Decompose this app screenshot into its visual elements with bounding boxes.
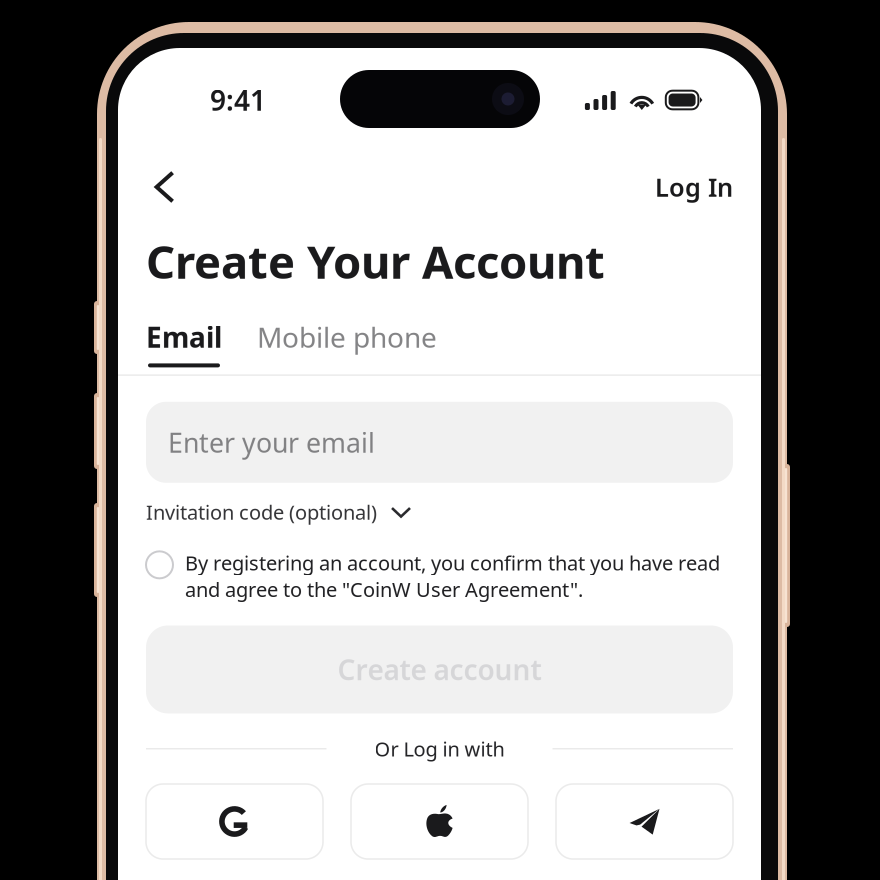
button[interactable]: Agree to the CoinW User Agreement — [146, 549, 173, 578]
button[interactable]: Log In — [655, 163, 733, 211]
button[interactable]: Continue with Google — [146, 784, 323, 859]
staticText: Create Your Account — [146, 231, 605, 291]
staticText: By registering an account, you confirm t… — [185, 549, 720, 602]
staticText: Log In — [655, 170, 733, 204]
button[interactable]: Invitation code (optional) — [146, 489, 733, 535]
button[interactable]: Continue with Telegram — [556, 784, 733, 859]
staticText: 9:41 — [210, 81, 266, 119]
button[interactable]: Back — [146, 164, 199, 209]
staticText: Invitation code (optional) — [146, 499, 377, 525]
staticText: Or Log in with — [374, 735, 504, 762]
staticText: Create account — [337, 651, 541, 688]
button[interactable]: Email — [146, 318, 222, 367]
staticText: Email — [146, 318, 222, 355]
button[interactable]: Continue with Apple — [351, 784, 528, 859]
staticText: Enter your email — [168, 425, 375, 460]
button[interactable]: Enter your email — [146, 402, 733, 483]
staticText: Mobile phone — [257, 318, 437, 355]
button[interactable]: Mobile phone — [257, 318, 437, 367]
button[interactable]: Create account — [146, 625, 733, 713]
